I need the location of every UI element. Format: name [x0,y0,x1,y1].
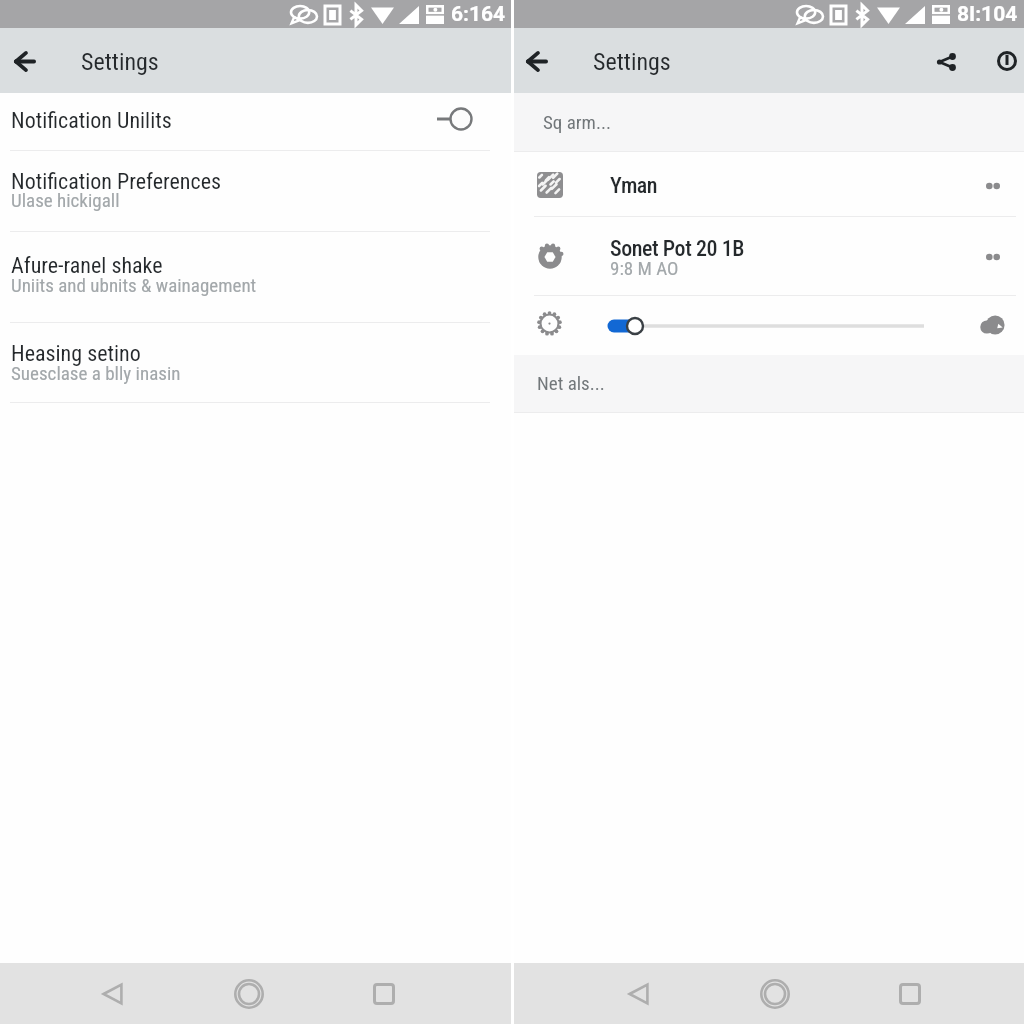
button[interactable]: Back [3,37,47,81]
button[interactable]: Afure-ranel shake [0,232,512,322]
button[interactable]: Back [515,37,559,81]
button[interactable]: Sonet Pot 20 1B [512,217,1024,295]
button[interactable]: Power [985,37,1021,73]
staticText: Net als... [537,372,605,394]
staticText: Yman [610,173,658,199]
staticText: Suesclase a blly inasin [11,362,181,384]
staticText: 9:8 M AO [610,257,679,279]
staticText: Sonet Pot 20 1B [610,236,744,262]
staticText: 8I:104 [957,2,1018,27]
button[interactable]: Back [616,972,660,1016]
button[interactable]: Recents [362,972,406,1016]
staticText: 6:164 [451,2,506,27]
button[interactable]: Yman [512,152,1024,216]
button[interactable]: Notification Unilits [0,93,512,150]
button[interactable]: Home [753,972,797,1016]
other: More options [986,252,1000,262]
staticText: Heasing setino [11,341,141,367]
staticText: Settings [81,48,159,76]
button[interactable]: Recents [888,972,932,1016]
staticText: Afure-ranel shake [11,253,163,279]
staticText: Sq arm... [543,111,611,133]
button[interactable]: Share [923,39,959,75]
button[interactable]: Brightness slider [512,296,1024,355]
other: More options [986,181,1000,191]
staticText: Notification Unilits [11,108,172,134]
other: Toggle notification units [435,100,475,124]
button[interactable]: Sq arm... [512,93,1024,151]
staticText: Notification Preferences [11,169,222,195]
staticText: Settings [593,48,671,76]
staticText: Ulase hickigall [11,189,120,211]
staticText: Uniits and ubnits & wainagement [11,274,257,296]
button[interactable]: Net als... [512,355,1024,412]
other: Brightness slider [602,312,930,340]
button[interactable]: Notification Preferences [0,151,512,231]
other: Volume [978,315,1004,335]
button[interactable]: Back [90,972,134,1016]
button[interactable]: Heasing setino [0,323,512,402]
button[interactable]: Home [227,972,271,1016]
